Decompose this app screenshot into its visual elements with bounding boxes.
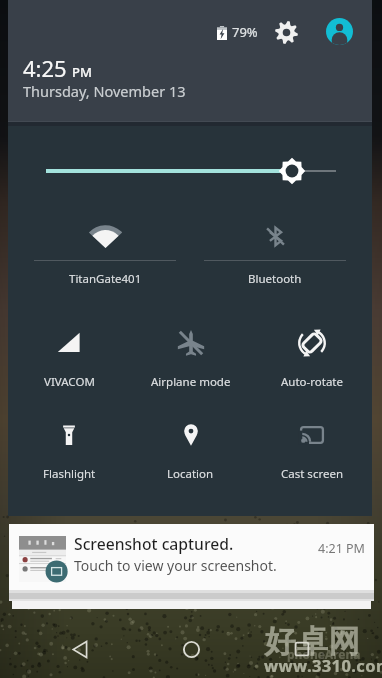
button[interactable]: Settings — [270, 16, 303, 49]
button[interactable]: Screenshot captured. — [9, 524, 374, 590]
staticText: Airplane mode — [151, 374, 231, 390]
button[interactable]: Home — [160, 626, 222, 672]
staticText: Location — [167, 466, 214, 482]
staticText: 4:21 PM — [318, 540, 365, 557]
button[interactable]: Auto-rotate — [251, 329, 372, 390]
button[interactable]: TitanGate401 — [34, 225, 176, 287]
staticText: Auto-rotate — [281, 374, 343, 390]
button[interactable]: VIVACOM — [8, 329, 130, 390]
staticText: VIVACOM — [44, 374, 95, 390]
staticText: TitanGate401 — [69, 271, 142, 287]
button[interactable]: Back — [49, 626, 111, 672]
staticText: 好卓网 — [264, 622, 360, 661]
button[interactable]: Airplane mode — [130, 329, 251, 390]
button[interactable]: Location — [130, 421, 251, 482]
staticText: Bluetooth — [248, 271, 302, 287]
button[interactable]: Flashlight — [8, 421, 130, 482]
button[interactable]: Cast screen — [251, 421, 372, 482]
staticText: phoneArena — [287, 646, 361, 662]
staticText: PM — [72, 63, 92, 81]
staticText: Flashlight — [43, 466, 96, 482]
button[interactable]: User profile — [324, 16, 355, 47]
staticText: Touch to view your screenshot. — [74, 556, 277, 575]
staticText: 4:25 — [23, 53, 67, 83]
staticText: 79% — [232, 23, 258, 41]
staticText: Screenshot captured. — [74, 533, 234, 554]
staticText: Thursday, November 13 — [23, 81, 186, 101]
staticText: Cast screen — [281, 466, 343, 482]
button[interactable]: Recent apps — [271, 626, 333, 672]
staticText: www.3310.com — [264, 654, 382, 676]
button[interactable]: Bluetooth — [204, 225, 346, 287]
